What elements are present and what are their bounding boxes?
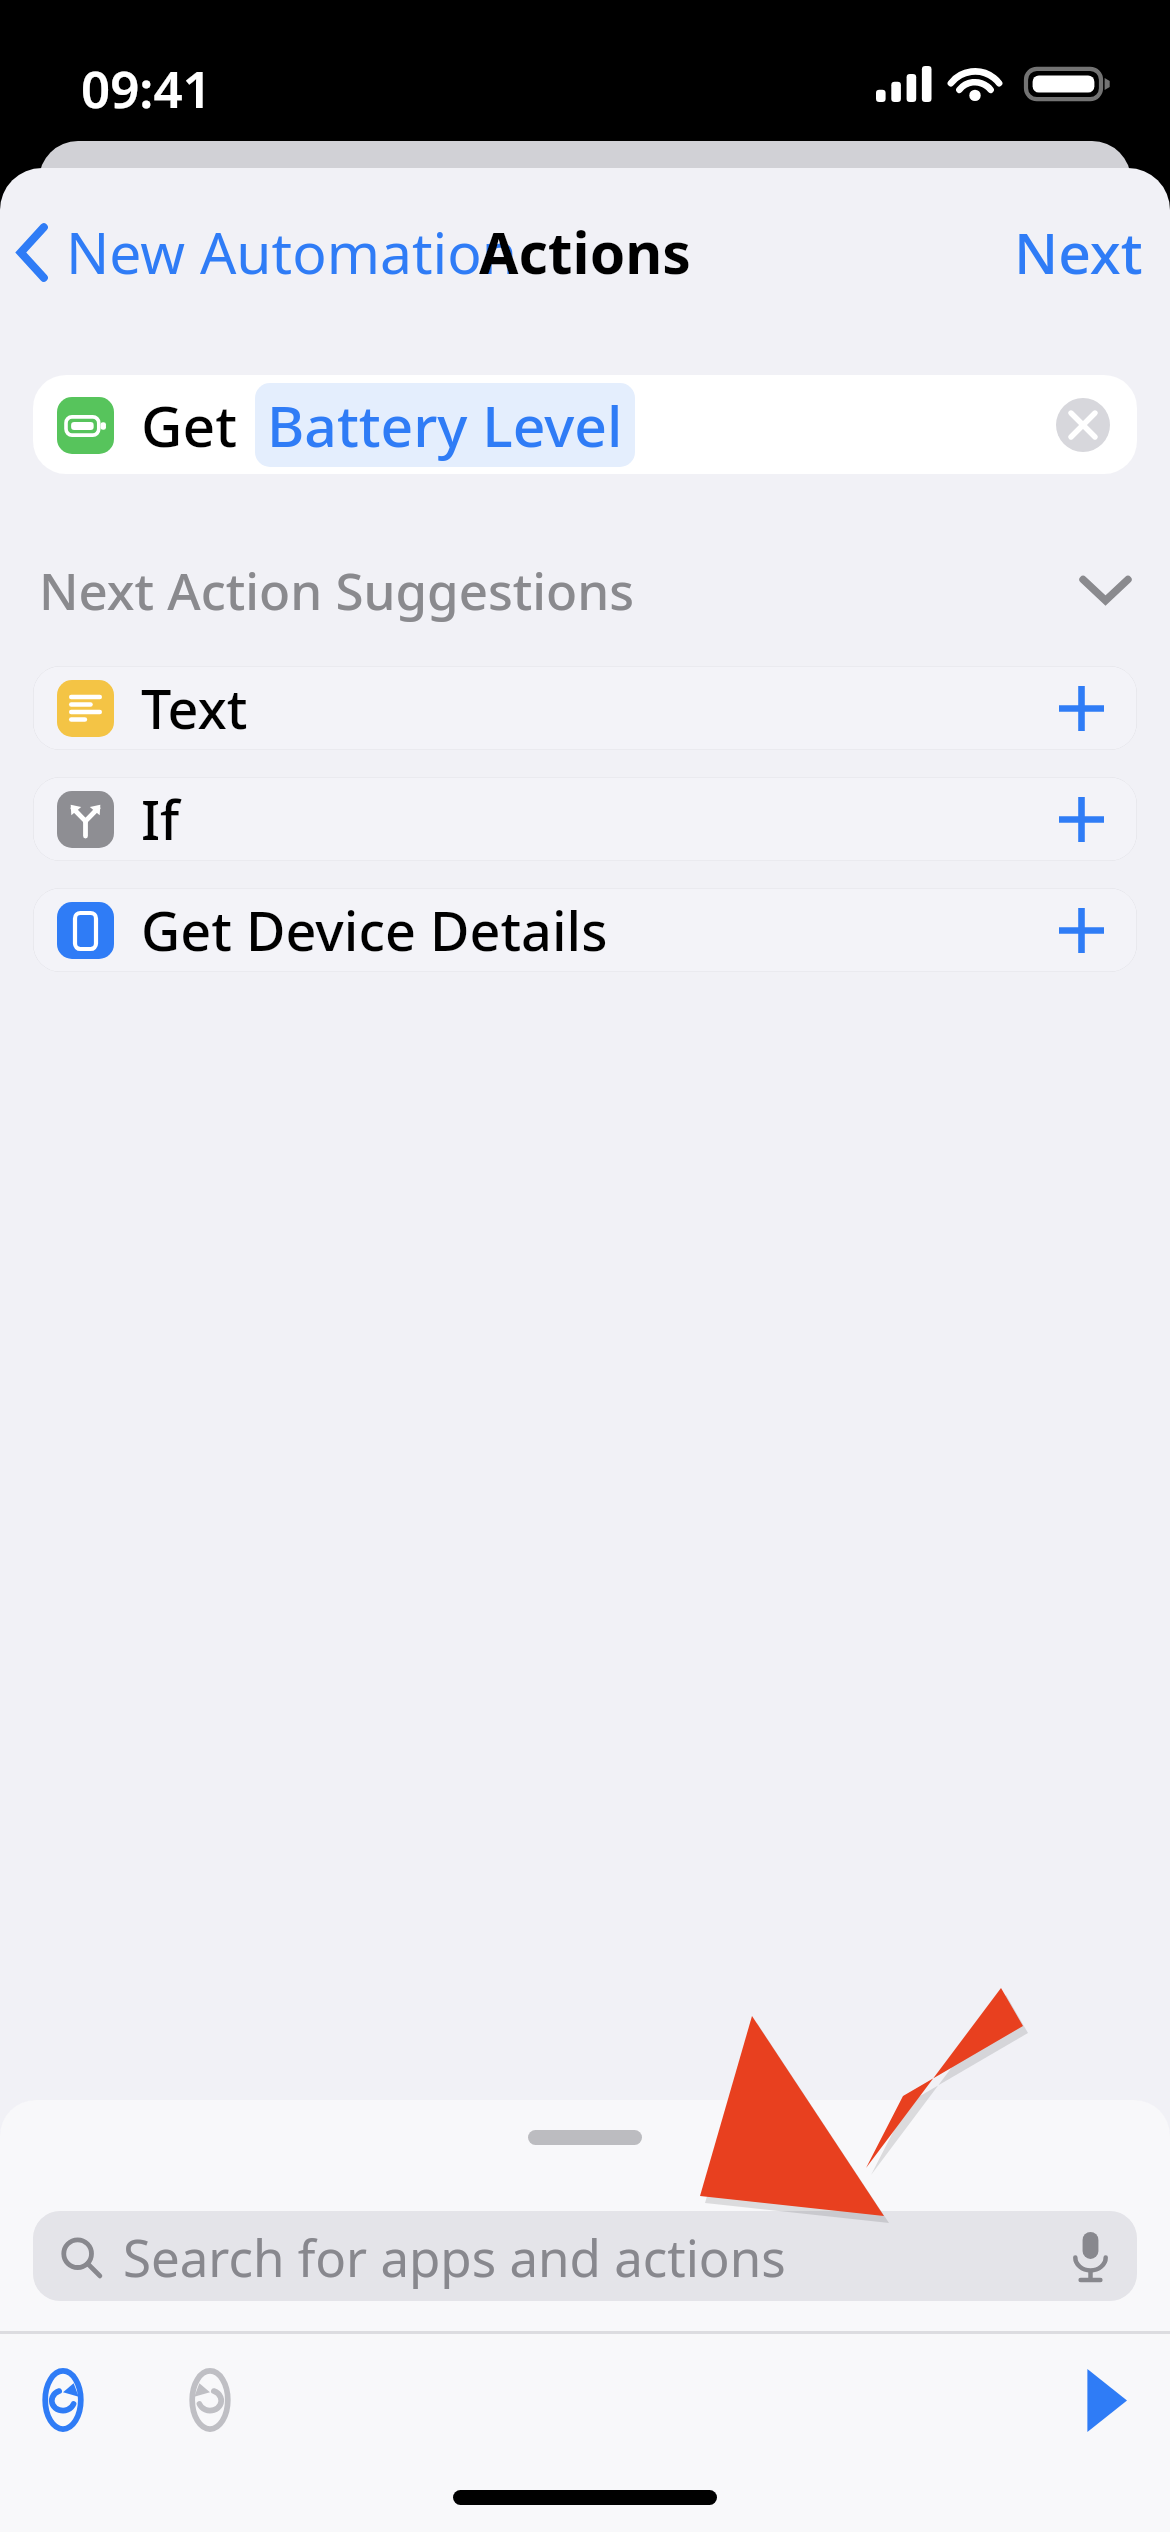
staticText: New Automation (66, 213, 517, 291)
staticText: Actions (479, 213, 691, 291)
button[interactable]: Next Action Suggestions (39, 555, 1131, 624)
button[interactable]: If (33, 777, 1137, 861)
button[interactable]: Run (1056, 2352, 1152, 2448)
staticText: 09:41 (81, 53, 212, 122)
button[interactable]: Get (33, 375, 1137, 474)
button[interactable]: Add Get Device Details (1059, 908, 1104, 953)
button[interactable]: Voice search (1074, 2232, 1107, 2280)
staticText: If (141, 782, 180, 856)
button[interactable]: Add If (1059, 797, 1104, 842)
button[interactable]: Remove action (1056, 398, 1110, 452)
button[interactable]: Get Device Details (33, 888, 1137, 972)
button[interactable]: Undo (15, 2352, 111, 2448)
staticText: Get Device Details (141, 893, 608, 967)
button[interactable]: Search for apps and actions (33, 2211, 1137, 2301)
button[interactable]: Text (33, 666, 1137, 750)
staticText: Get (141, 386, 237, 464)
staticText: Text (141, 671, 248, 745)
other: Collapse (1080, 575, 1131, 605)
staticText: Battery Level (267, 386, 623, 464)
staticText: Search for apps and actions (123, 2222, 786, 2291)
button[interactable]: Add Text (1059, 686, 1104, 731)
button[interactable]: New Automation (0, 198, 535, 306)
button[interactable]: Next (987, 198, 1170, 306)
staticText: Next Action Suggestions (39, 555, 635, 624)
button[interactable]: Redo (162, 2352, 258, 2448)
